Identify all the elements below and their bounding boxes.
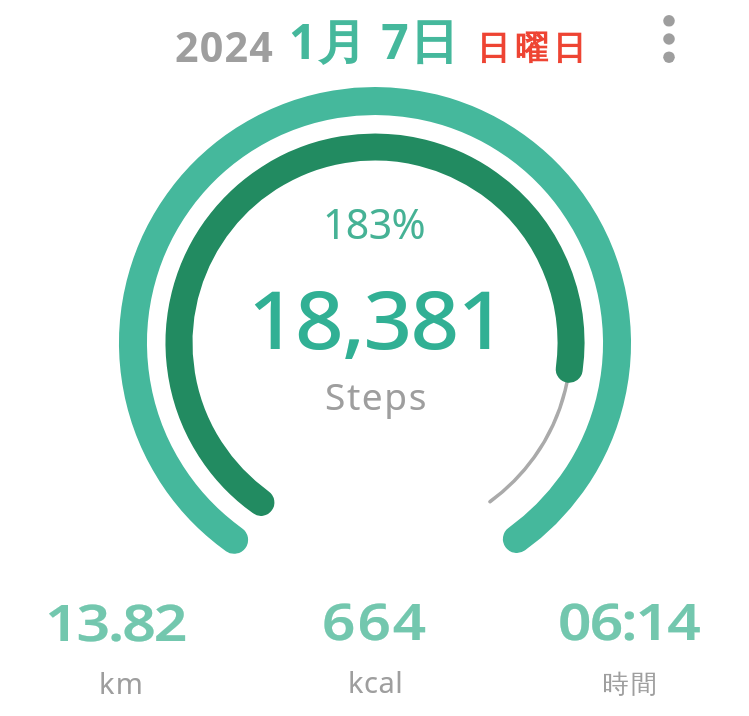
staticText: Steps <box>325 370 429 420</box>
staticText: 183% <box>323 195 426 251</box>
staticText: 1月 7日 <box>289 8 460 74</box>
staticText: km <box>99 663 145 702</box>
staticText: 13.82 <box>45 588 186 656</box>
staticText: kcal <box>348 662 404 701</box>
staticText: 664 <box>322 587 429 655</box>
staticText: 日曜日 <box>477 27 592 68</box>
button[interactable]: More options <box>645 0 693 86</box>
button[interactable] <box>8 585 228 705</box>
staticText: 18,381 <box>248 264 505 372</box>
button[interactable] <box>520 585 740 705</box>
button[interactable] <box>265 585 485 705</box>
staticText: 06:14 <box>558 587 700 655</box>
staticText: 時間 <box>601 668 658 701</box>
staticText: 2024 <box>175 18 275 74</box>
